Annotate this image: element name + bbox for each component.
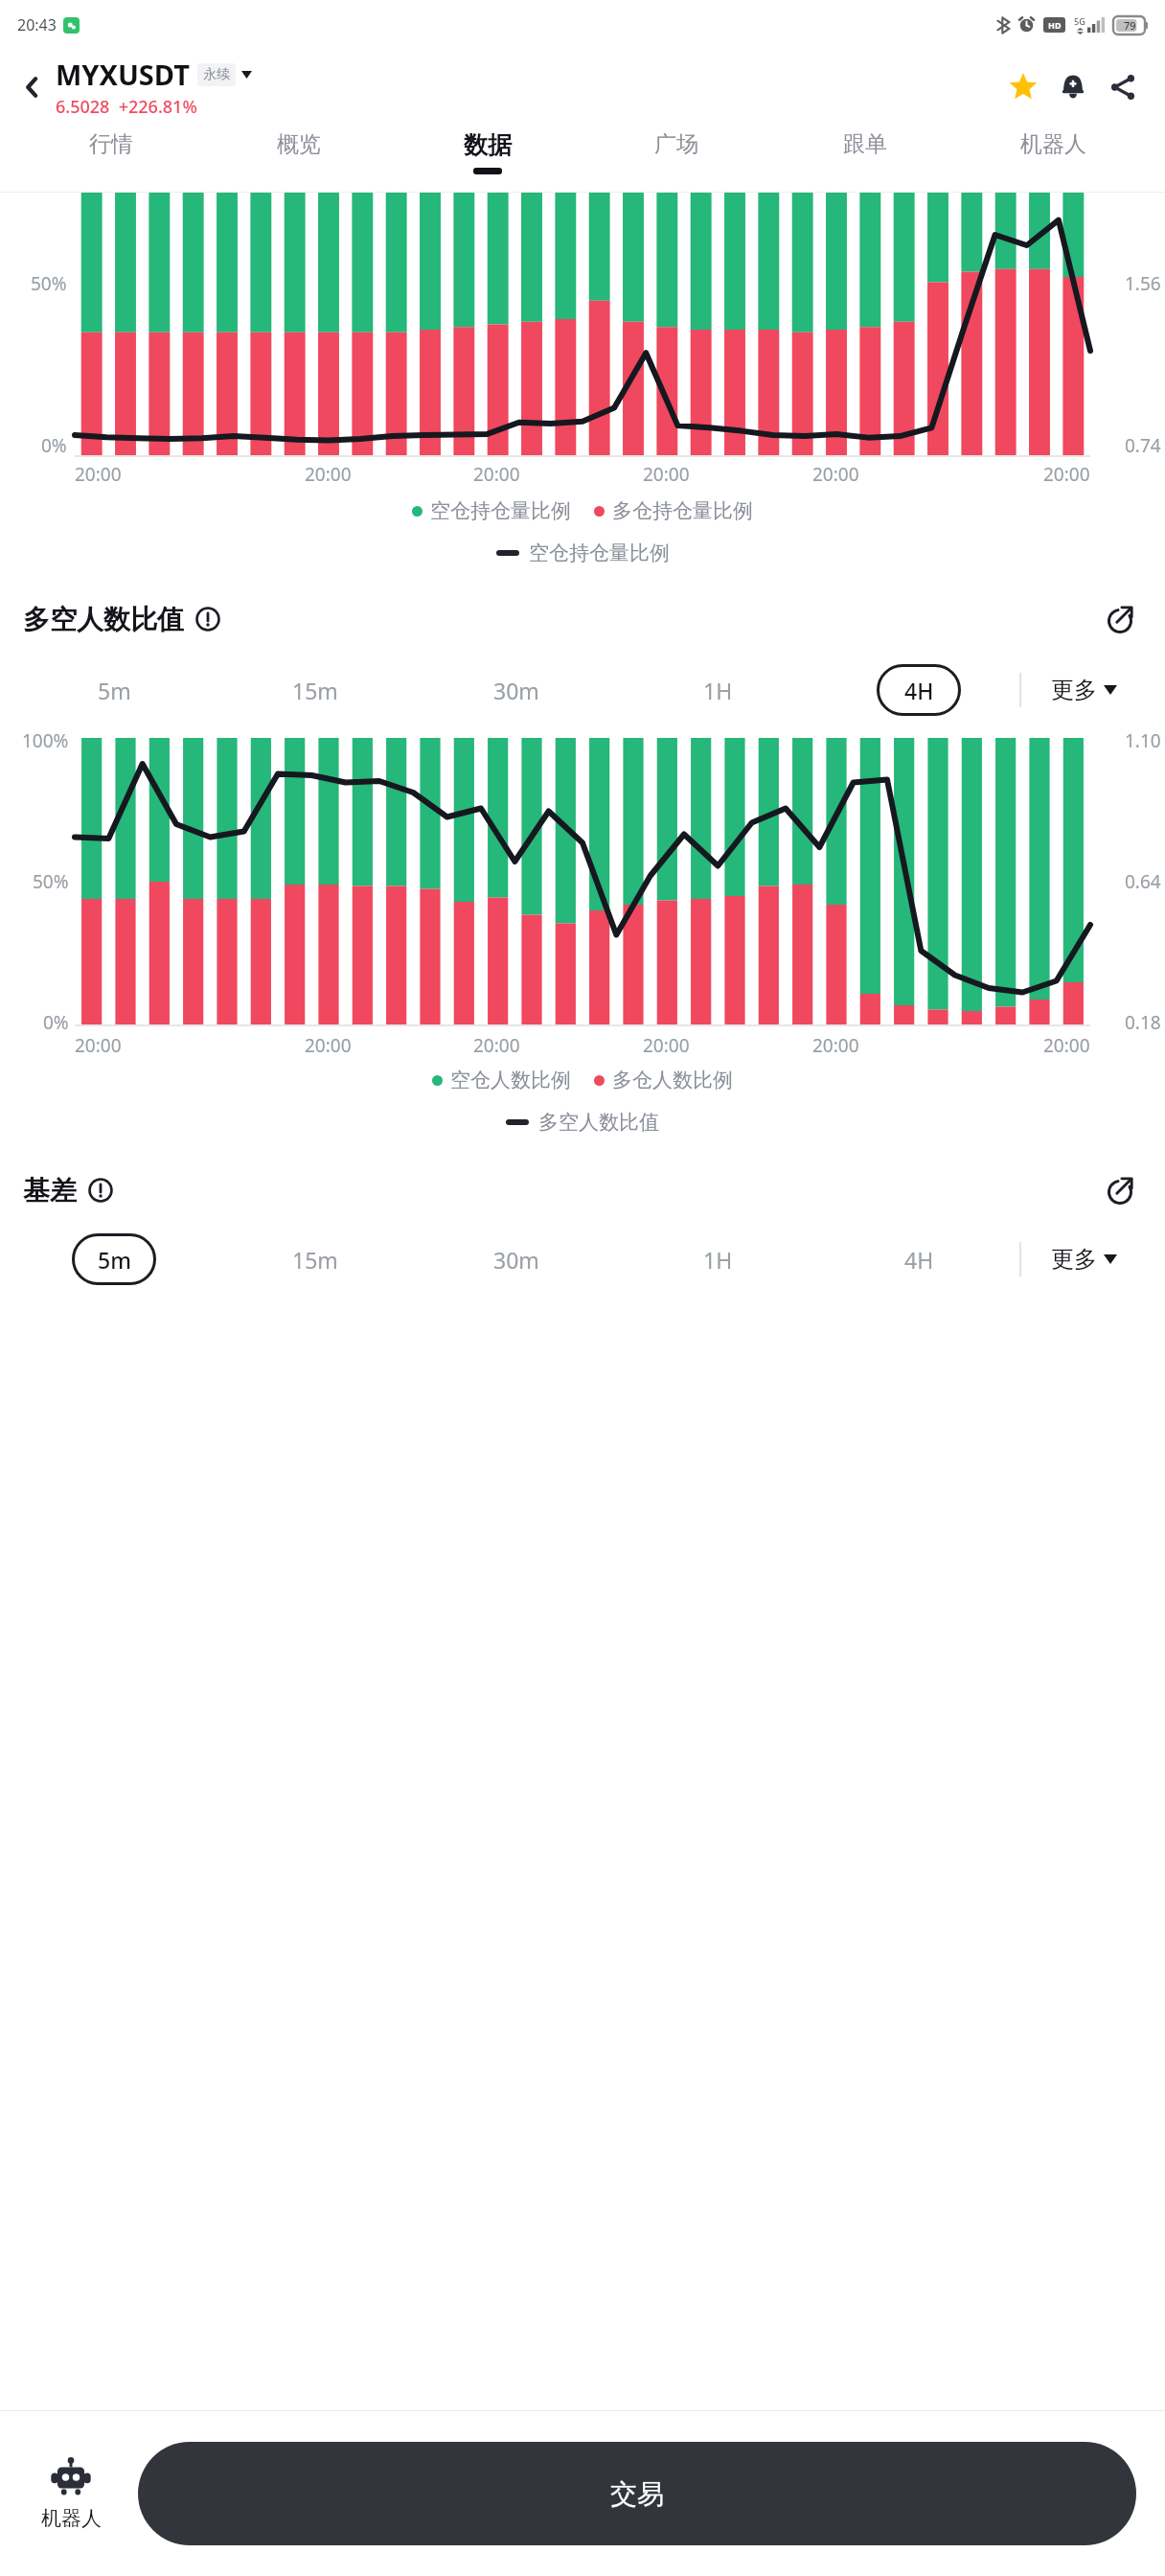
staticText: 100% bbox=[22, 728, 69, 753]
staticText: 20:00 bbox=[473, 1033, 520, 1058]
staticText: 行情 bbox=[89, 130, 133, 158]
staticText: 更多 bbox=[1051, 1245, 1097, 1274]
staticText: 0.74 bbox=[1125, 433, 1161, 458]
button[interactable]: Share bbox=[1098, 62, 1148, 112]
staticText: 机器人 bbox=[1020, 130, 1086, 158]
staticText: 15m bbox=[292, 1245, 338, 1275]
button[interactable]: 行情 bbox=[17, 125, 205, 192]
staticText: 20:00 bbox=[1043, 462, 1090, 487]
button[interactable]: 30m bbox=[416, 1225, 617, 1294]
staticText: 4H bbox=[904, 676, 934, 705]
staticText: 4H bbox=[904, 1245, 934, 1275]
staticText: 20:00 bbox=[812, 462, 859, 487]
button[interactable]: Info bbox=[194, 605, 222, 633]
staticText: 空仓人数比例 bbox=[450, 1068, 571, 1092]
staticText: 0.18 bbox=[1125, 1010, 1161, 1035]
staticText: 5m bbox=[98, 676, 131, 705]
staticText: 1.56 bbox=[1125, 271, 1161, 296]
button[interactable]: 1H bbox=[617, 655, 818, 724]
staticText: MYXUSDT bbox=[56, 56, 190, 93]
staticText: 79 bbox=[1124, 18, 1136, 33]
button[interactable]: Favorite bbox=[998, 62, 1048, 112]
staticText: 20:43 bbox=[17, 14, 57, 35]
staticText: 广场 bbox=[654, 130, 698, 158]
staticText: 20:00 bbox=[473, 462, 520, 487]
button[interactable]: 4H bbox=[818, 655, 1019, 724]
staticText: 5m bbox=[98, 1245, 131, 1275]
button[interactable]: 机器人 bbox=[13, 2411, 128, 2576]
staticText: 30m bbox=[493, 1245, 539, 1275]
button[interactable]: 交易 bbox=[138, 2442, 1136, 2545]
staticText: 1H bbox=[703, 1245, 733, 1275]
button[interactable]: 5m bbox=[13, 655, 215, 724]
staticText: 跟单 bbox=[843, 130, 887, 158]
staticText: 50% bbox=[31, 271, 67, 296]
staticText: 6.5028 +226.81% bbox=[56, 95, 197, 119]
button[interactable]: 15m bbox=[215, 1225, 416, 1294]
button[interactable]: 更多 bbox=[1021, 1225, 1146, 1294]
staticText: 基差 bbox=[23, 1174, 77, 1207]
staticText: HD bbox=[1048, 19, 1062, 31]
staticText: 30m bbox=[493, 676, 539, 705]
staticText: 20:00 bbox=[75, 1033, 122, 1058]
button[interactable]: 5m bbox=[13, 1225, 215, 1294]
button[interactable]: MYXUSDT bbox=[56, 56, 252, 93]
staticText: 数据 bbox=[464, 130, 512, 160]
staticText: 多仓持仓量比例 bbox=[612, 498, 753, 523]
staticText: 多空人数比值 bbox=[538, 1110, 659, 1135]
button[interactable]: 4H bbox=[818, 1225, 1019, 1294]
staticText: 机器人 bbox=[41, 2506, 102, 2531]
button[interactable]: 1H bbox=[617, 1225, 818, 1294]
staticText: 5G bbox=[1074, 15, 1085, 27]
staticText: 20:00 bbox=[1043, 1033, 1090, 1058]
button[interactable]: 30m bbox=[416, 655, 617, 724]
button[interactable]: 更多 bbox=[1021, 655, 1146, 724]
button[interactable]: Back bbox=[10, 64, 56, 110]
staticText: 20:00 bbox=[643, 1033, 690, 1058]
staticText: 1H bbox=[703, 676, 733, 705]
staticText: 0% bbox=[41, 433, 67, 458]
staticText: 0.64 bbox=[1125, 869, 1161, 894]
button[interactable]: Info bbox=[86, 1176, 115, 1205]
button[interactable]: 广场 bbox=[582, 125, 770, 192]
button[interactable]: Alert bbox=[1048, 62, 1098, 112]
staticText: 20:00 bbox=[75, 462, 122, 487]
staticText: 空仓持仓量比例 bbox=[529, 540, 670, 565]
staticText: 50% bbox=[33, 869, 69, 894]
staticText: 20:00 bbox=[643, 462, 690, 487]
button[interactable]: 15m bbox=[215, 655, 416, 724]
staticText: 空仓持仓量比例 bbox=[430, 498, 571, 523]
staticText: 交易 bbox=[610, 2477, 664, 2511]
staticText: 20:00 bbox=[305, 462, 352, 487]
staticText: 概览 bbox=[277, 130, 321, 158]
staticText: 多仓人数比例 bbox=[612, 1068, 733, 1092]
button[interactable]: 概览 bbox=[205, 125, 393, 192]
staticText: 永续 bbox=[203, 66, 230, 83]
staticText: 多空人数比值 bbox=[23, 603, 184, 636]
staticText: 20:00 bbox=[305, 1033, 352, 1058]
staticText: 20:00 bbox=[812, 1033, 859, 1058]
button[interactable]: 跟单 bbox=[770, 125, 959, 192]
button[interactable]: Expand bbox=[1098, 1168, 1142, 1212]
staticText: 更多 bbox=[1051, 676, 1097, 704]
button[interactable]: 数据 bbox=[393, 125, 582, 192]
staticText: 0% bbox=[43, 1010, 69, 1035]
button[interactable]: 机器人 bbox=[959, 125, 1148, 192]
staticText: 15m bbox=[292, 676, 338, 705]
staticText: 1.10 bbox=[1125, 728, 1161, 753]
button[interactable]: Expand bbox=[1098, 597, 1142, 641]
